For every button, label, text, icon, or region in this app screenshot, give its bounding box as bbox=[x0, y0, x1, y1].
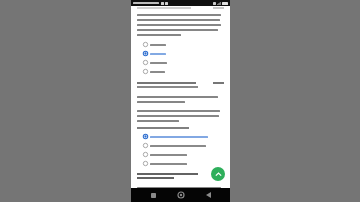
button[interactable] bbox=[137, 141, 224, 150]
button[interactable] bbox=[137, 40, 224, 49]
button[interactable]: Back bbox=[202, 189, 214, 201]
button[interactable]: Home bbox=[175, 189, 187, 201]
button[interactable] bbox=[137, 58, 224, 67]
button[interactable]: Recents bbox=[147, 189, 159, 201]
button[interactable] bbox=[137, 159, 224, 168]
button[interactable] bbox=[137, 150, 224, 159]
button[interactable] bbox=[137, 132, 224, 141]
button[interactable] bbox=[137, 67, 224, 76]
button[interactable]: Scroll to top bbox=[211, 167, 225, 181]
button[interactable] bbox=[137, 49, 224, 58]
